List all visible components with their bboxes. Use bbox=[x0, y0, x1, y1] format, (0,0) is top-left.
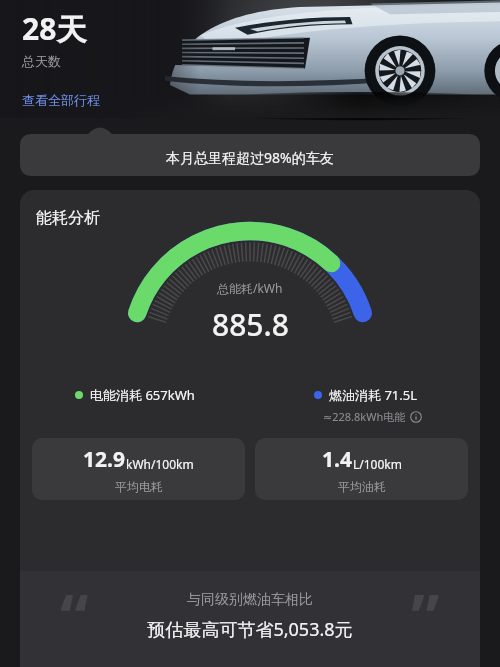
button[interactable]: 查看全部行程 bbox=[22, 92, 100, 108]
staticText: 总天数 bbox=[22, 53, 61, 69]
staticText: 总能耗/kWh bbox=[217, 280, 283, 296]
button[interactable]: 12.9 bbox=[32, 438, 245, 500]
staticText: 28天 bbox=[22, 8, 87, 49]
button[interactable]: 1.4 bbox=[255, 438, 468, 500]
staticText: ” bbox=[411, 573, 440, 660]
staticText: 燃油消耗 71.5L bbox=[329, 386, 417, 404]
staticText: 885.8 bbox=[212, 304, 289, 345]
staticText: 平均油耗 bbox=[338, 479, 386, 494]
staticText: 本月总里程超过98%的车友 bbox=[166, 148, 334, 167]
button[interactable]: 说明 bbox=[410, 411, 422, 423]
staticText: 平均电耗 bbox=[115, 479, 163, 494]
staticText: 12.9 bbox=[83, 445, 125, 474]
button[interactable]: “ bbox=[20, 571, 480, 667]
staticText: 1.4 bbox=[322, 445, 352, 474]
staticText: ≈228.8kWh电能 bbox=[323, 409, 406, 424]
staticText: kWh/100km bbox=[126, 456, 194, 472]
staticText: 预估最高可节省5,053.8元 bbox=[147, 617, 353, 642]
button[interactable]: 本月总里程超过98%的车友 bbox=[0, 134, 500, 180]
staticText: “ bbox=[60, 573, 89, 660]
staticText: L/100km bbox=[353, 456, 402, 472]
staticText: 电能消耗 657kWh bbox=[90, 386, 195, 404]
staticText: 能耗分析 bbox=[36, 208, 100, 228]
staticText: 与同级别燃油车相比 bbox=[187, 591, 313, 609]
staticText: 查看全部行程 bbox=[22, 92, 100, 108]
